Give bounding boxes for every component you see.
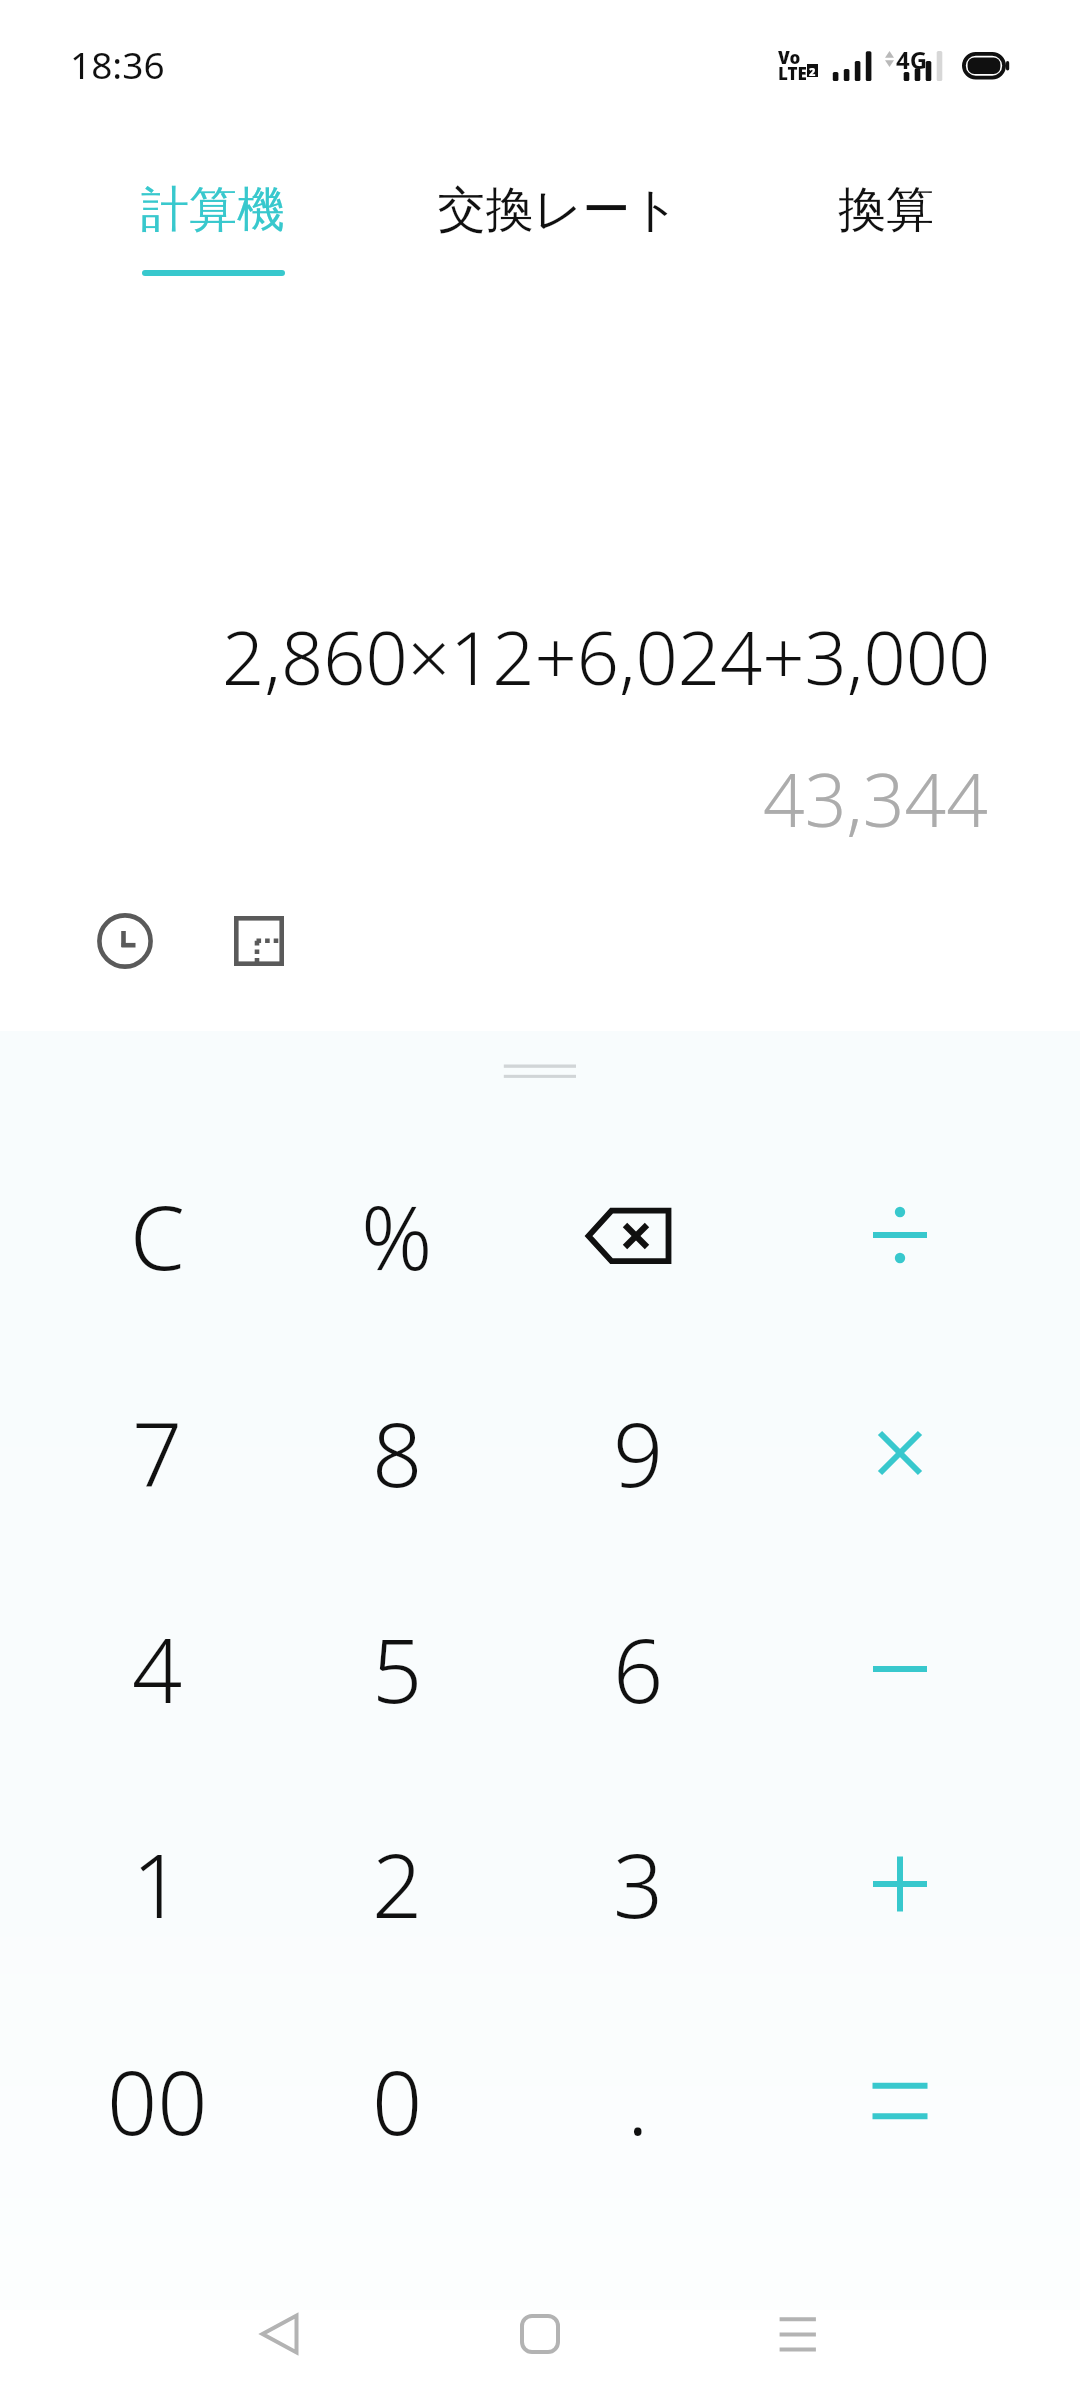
button[interactable]: 交換レート xyxy=(408,150,708,276)
button[interactable]: Minus xyxy=(780,1561,1020,1777)
button[interactable]: 2 xyxy=(277,1776,517,1992)
staticText: 9 xyxy=(613,1393,664,1513)
staticText: 7 xyxy=(132,1393,183,1513)
button[interactable]: 計算機 xyxy=(63,150,363,276)
button[interactable]: Equals xyxy=(780,1993,1020,2209)
staticText: 計算機 xyxy=(141,180,285,240)
button[interactable]: C xyxy=(37,1128,277,1344)
button[interactable]: 5 xyxy=(277,1561,517,1777)
staticText: 0 xyxy=(372,2041,423,2161)
staticText: . xyxy=(627,2041,649,2161)
button[interactable]: Recent apps xyxy=(768,2304,828,2364)
button[interactable]: Divide xyxy=(780,1128,1020,1344)
staticText: 2,860×12+6,024+3,000 xyxy=(222,606,991,702)
staticText: 4G xyxy=(896,43,928,76)
button[interactable]: 00 xyxy=(37,1993,277,2209)
staticText: 43,344 xyxy=(763,749,988,845)
button[interactable]: 0 xyxy=(277,1993,517,2209)
button[interactable]: Plus xyxy=(780,1776,1020,1992)
staticText: 18:36 xyxy=(70,39,165,89)
staticText: 1 xyxy=(132,1824,183,1944)
button[interactable]: 6 xyxy=(518,1561,758,1777)
button[interactable]: 9 xyxy=(518,1345,758,1561)
staticText: 8 xyxy=(372,1393,423,1513)
staticText: C xyxy=(130,1176,185,1296)
staticText: Vo xyxy=(778,46,801,69)
staticText: LTE xyxy=(778,62,807,85)
staticText: 換算 xyxy=(838,180,934,240)
button[interactable]: Home xyxy=(510,2304,570,2364)
button[interactable]: 7 xyxy=(37,1345,277,1561)
button[interactable]: History xyxy=(97,913,153,969)
button[interactable]: Back xyxy=(250,2304,310,2364)
button[interactable]: 3 xyxy=(518,1776,758,1992)
staticText: 4 xyxy=(132,1609,183,1729)
staticText: 6 xyxy=(613,1609,664,1729)
button[interactable]: % xyxy=(277,1128,517,1344)
staticText: 3 xyxy=(613,1824,664,1944)
staticText: 5 xyxy=(372,1609,423,1729)
button[interactable]: Resize display xyxy=(234,916,284,966)
staticText: 交換レート xyxy=(437,180,680,240)
staticText: 2 xyxy=(372,1824,423,1944)
button[interactable]: 8 xyxy=(277,1345,517,1561)
button[interactable]: Multiply xyxy=(780,1345,1020,1561)
button[interactable]: 4 xyxy=(37,1561,277,1777)
button[interactable]: 換算 xyxy=(736,150,1036,276)
staticText: 00 xyxy=(107,2041,208,2161)
staticText: 2 xyxy=(809,64,816,77)
button[interactable]: Backspace xyxy=(518,1128,758,1344)
button[interactable]: 1 xyxy=(37,1776,277,1992)
staticText: % xyxy=(361,1176,433,1296)
button[interactable]: . xyxy=(518,1993,758,2209)
